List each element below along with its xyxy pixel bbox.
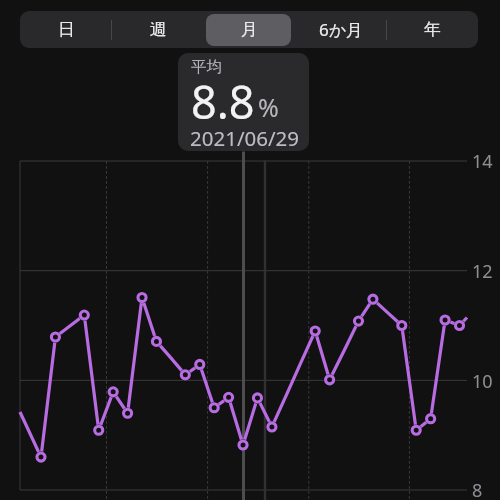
button[interactable]: 日 (20, 11, 112, 48)
staticText: 12 (472, 259, 493, 284)
staticText: 2021/06/29 (190, 124, 300, 151)
button[interactable]: 年 (386, 11, 478, 48)
button[interactable]: 週 (112, 11, 204, 48)
staticText: 週 (150, 19, 167, 40)
staticText: 平均 (191, 57, 222, 77)
staticText: 8 (472, 478, 483, 500)
other: Monthly percentage line chart (0, 0, 500, 500)
staticText: 日 (58, 19, 75, 40)
staticText: 年 (424, 19, 441, 40)
staticText: 6か月 (319, 18, 364, 41)
staticText: 月 (241, 19, 258, 40)
button[interactable]: 6か月 (295, 11, 387, 48)
staticText: 10 (472, 369, 493, 394)
button[interactable]: 月 (203, 11, 295, 48)
button[interactable]: 平均 (178, 53, 309, 151)
staticText: 14 (472, 149, 493, 174)
staticText: 8.8 (191, 71, 255, 132)
staticText: % (258, 90, 279, 124)
